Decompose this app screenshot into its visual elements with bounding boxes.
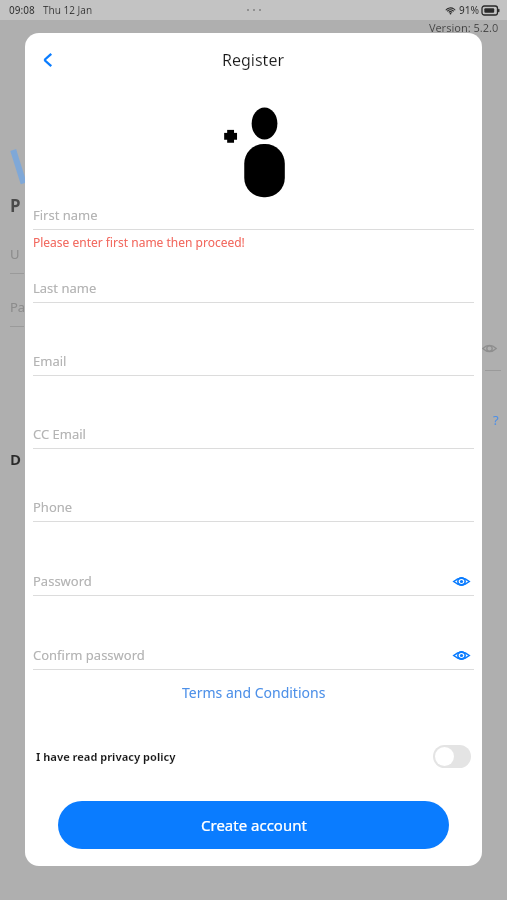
staticText: 91% — [459, 3, 479, 17]
staticText: Version: 5.2.0 — [429, 20, 499, 35]
button[interactable]: Privacy policy toggle — [433, 745, 471, 768]
button[interactable]: Phone — [33, 493, 474, 521]
staticText: Create account — [201, 815, 307, 835]
staticText: First name — [33, 206, 98, 224]
staticText: Password — [33, 572, 92, 590]
staticText: CC Email — [33, 425, 86, 443]
button[interactable]: Show password — [448, 642, 474, 668]
button[interactable]: Create account — [58, 801, 449, 849]
button[interactable]: Email — [33, 347, 474, 375]
button[interactable]: Terms and Conditions — [172, 677, 336, 708]
staticText: P — [10, 194, 21, 217]
button[interactable]: Last name — [33, 274, 474, 302]
staticText: Email — [33, 352, 67, 370]
staticText: Please enter first name then proceed! — [33, 234, 245, 250]
button[interactable]: Show password — [448, 568, 474, 594]
staticText: Register — [222, 49, 285, 71]
staticText: Pa — [10, 298, 26, 316]
staticText: Terms and Conditions — [182, 683, 326, 702]
button[interactable]: Confirm password — [33, 641, 474, 669]
staticText: ? — [493, 411, 499, 429]
staticText: Thu 12 Jan — [43, 3, 93, 17]
button[interactable]: CC Email — [33, 420, 474, 448]
button[interactable]: Back — [28, 40, 68, 80]
staticText: 09:08 — [9, 3, 35, 17]
staticText: D — [10, 449, 21, 469]
button[interactable]: First name — [33, 201, 474, 229]
staticText: Confirm password — [33, 646, 145, 664]
staticText: Last name — [33, 279, 97, 297]
staticText: I have read privacy policy — [36, 749, 176, 764]
staticText: Phone — [33, 498, 73, 516]
button[interactable]: Password — [33, 567, 474, 595]
staticText: U — [10, 245, 20, 263]
button[interactable]: I have read privacy policy — [25, 735, 482, 777]
